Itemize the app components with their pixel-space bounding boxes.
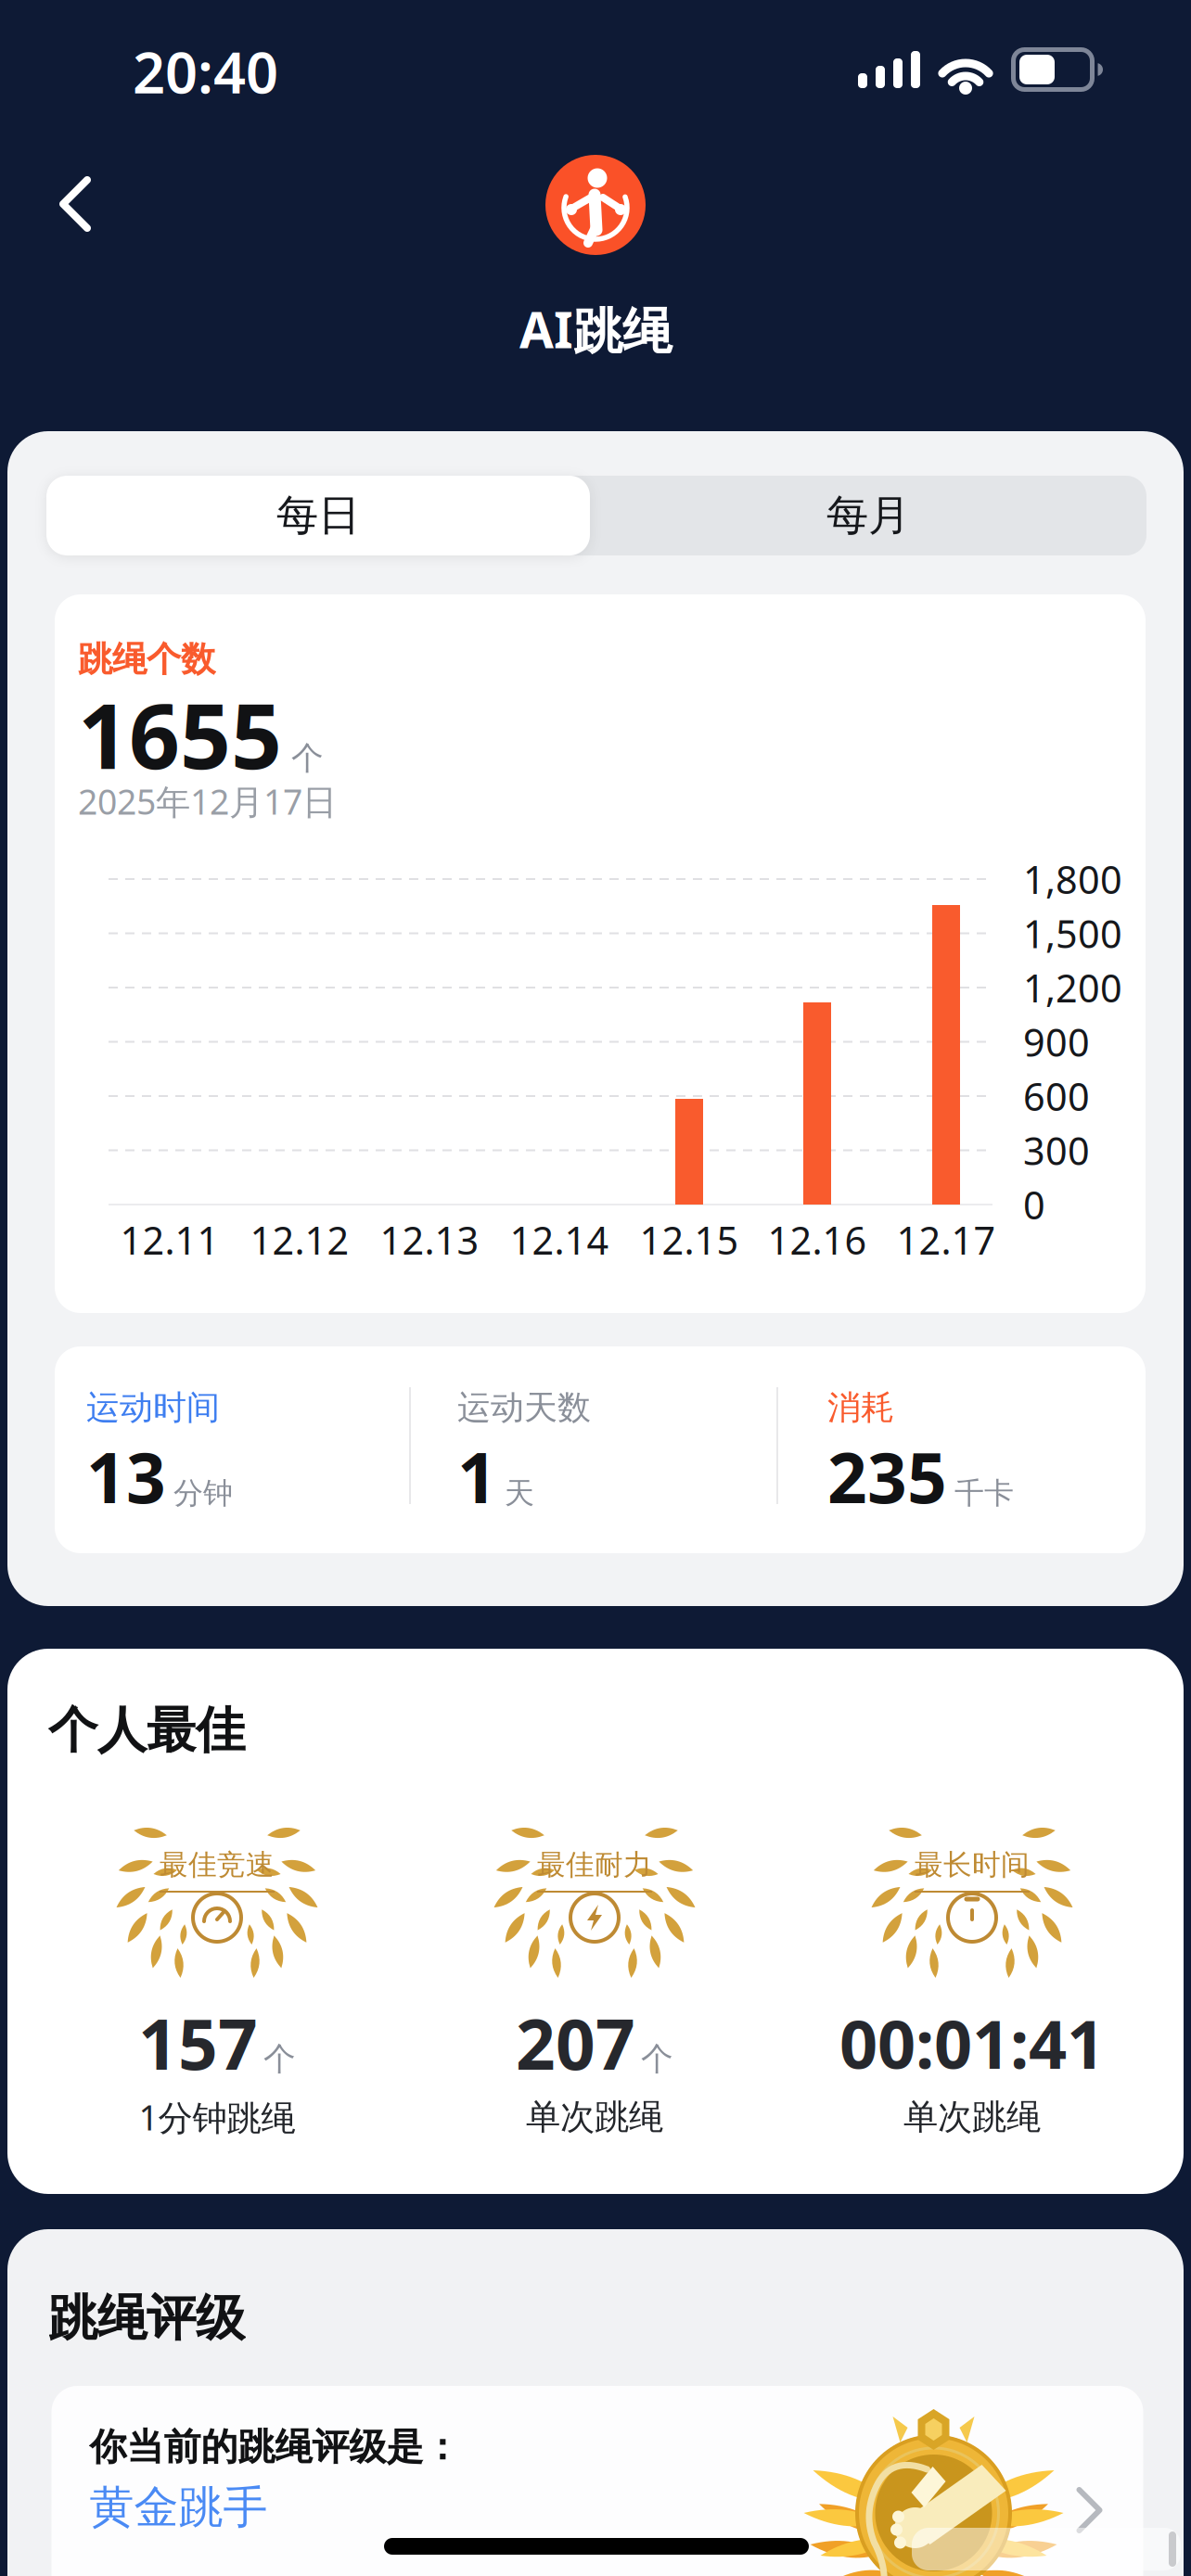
staticText: 235 [827, 1430, 947, 1522]
staticText: 天 [505, 1475, 534, 1511]
staticText: 你当前的跳绳评级是： [90, 2424, 461, 2470]
staticText: 个 [263, 2039, 296, 2079]
staticText: 12.14 [510, 1214, 609, 1265]
staticText: 消耗 [827, 1387, 894, 1428]
staticText: 1655 [78, 675, 282, 794]
button[interactable]: 每月 [596, 476, 1140, 555]
staticText: 12.11 [120, 1214, 219, 1265]
staticText: 每月 [826, 490, 910, 541]
staticText: 分钟 [173, 1475, 233, 1511]
staticText: 个 [291, 738, 324, 778]
button[interactable]: Back [38, 167, 112, 241]
button[interactable]: 每日 [46, 476, 590, 555]
staticText: 12.17 [896, 1214, 996, 1265]
staticText: 运动时间 [86, 1387, 220, 1428]
staticText: 个人最佳 [48, 1700, 245, 1761]
staticText: 最佳竞速 [160, 1847, 275, 1882]
staticText: 每日 [276, 490, 360, 541]
staticText: 跳绳评级 [48, 2288, 245, 2349]
staticText: 运动天数 [457, 1387, 591, 1428]
staticText: 300 [1023, 1125, 1090, 1176]
staticText: 12.13 [380, 1214, 479, 1265]
staticText: 900 [1023, 1016, 1090, 1067]
staticText: 跳绳个数 [78, 638, 215, 681]
staticText: 1,800 [1023, 854, 1122, 905]
staticText: 13 [86, 1430, 166, 1522]
staticText: 1 [457, 1430, 497, 1522]
staticText: 600 [1023, 1071, 1090, 1122]
staticText: 157 [138, 1997, 258, 2089]
staticText: 黄金跳手 [90, 2480, 268, 2535]
staticText: 12.12 [250, 1214, 349, 1265]
staticText: 个 [641, 2039, 673, 2079]
staticText: 2025年12月17日 [78, 778, 337, 824]
staticText: 12.16 [768, 1214, 867, 1265]
staticText: 千卡 [954, 1475, 1014, 1511]
staticText: 单次跳绳 [903, 2096, 1041, 2138]
staticText: 0 [1023, 1179, 1045, 1230]
staticText: 最长时间 [915, 1847, 1030, 1882]
staticText: 1分钟跳绳 [139, 2094, 295, 2140]
staticText: 1,500 [1023, 908, 1122, 959]
staticText: 00:01:41 [839, 1998, 1105, 2087]
staticText: 12.15 [640, 1214, 739, 1265]
staticText: 最佳耐力 [537, 1847, 652, 1882]
button[interactable]: 你当前的跳绳评级是： [51, 2386, 1143, 2576]
staticText: 1,200 [1023, 962, 1122, 1013]
staticText: AI跳绳 [519, 296, 672, 362]
staticText: 20:40 [133, 34, 278, 109]
staticText: 207 [516, 1997, 635, 2089]
staticText: 单次跳绳 [526, 2096, 663, 2138]
